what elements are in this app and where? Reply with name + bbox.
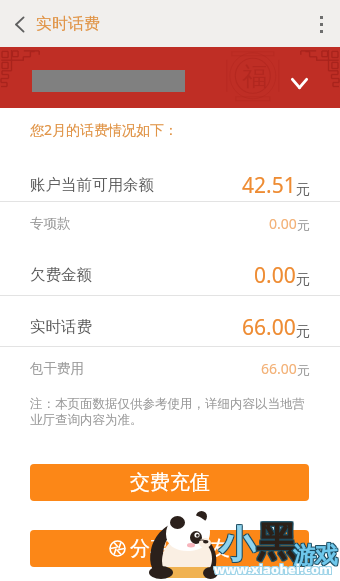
staticText: 小 bbox=[220, 521, 257, 568]
staticText: www.xiaohei.com bbox=[213, 559, 332, 577]
staticText: 实时话费 bbox=[36, 14, 100, 34]
staticText: 游 bbox=[294, 540, 317, 569]
staticText: 账户当前可用余额 bbox=[30, 175, 154, 195]
staticText: 黑 bbox=[256, 518, 297, 570]
staticText: 游 bbox=[294, 542, 317, 571]
staticText: 戏 bbox=[314, 540, 337, 569]
button[interactable]: More options bbox=[302, 5, 340, 43]
staticText: 黑 bbox=[257, 516, 298, 568]
staticText: 欠费金额 bbox=[30, 265, 92, 285]
staticText: 元 bbox=[296, 323, 310, 341]
staticText: 小 bbox=[219, 522, 256, 569]
staticText: 黑 bbox=[256, 517, 297, 569]
staticText: 元 bbox=[297, 362, 310, 378]
staticText: 元 bbox=[296, 271, 310, 289]
staticText: 小 bbox=[218, 522, 255, 569]
staticText: 小 bbox=[220, 520, 257, 567]
button[interactable]: 账户当前可用余额 bbox=[0, 169, 340, 201]
staticText: 游 bbox=[293, 541, 316, 570]
button[interactable]: 包干费用 bbox=[0, 346, 340, 390]
staticText: 小 bbox=[218, 521, 255, 568]
staticText: 黑 bbox=[255, 517, 296, 569]
staticText: 福 bbox=[242, 61, 267, 92]
staticText: 42.51 bbox=[242, 171, 296, 200]
button[interactable]: 实时话费 bbox=[0, 302, 340, 352]
staticText: www.xiaohei.com bbox=[215, 559, 334, 577]
staticText: 戏 bbox=[315, 540, 338, 569]
staticText: 黑 bbox=[256, 516, 297, 568]
staticText: www.xiaohei.com bbox=[214, 560, 333, 578]
other: Select account bbox=[291, 78, 308, 89]
button[interactable]: Back bbox=[0, 5, 38, 43]
staticText: 0.00 bbox=[269, 214, 297, 233]
staticText: 元 bbox=[296, 181, 310, 199]
staticText: 戏 bbox=[316, 541, 339, 570]
button[interactable]: 专项款 bbox=[0, 201, 340, 246]
staticText: www.xiaohei.com bbox=[215, 560, 334, 578]
staticText: www.xiaohei.com bbox=[214, 559, 333, 577]
staticText: 游 bbox=[292, 541, 315, 570]
staticText: 游 bbox=[294, 541, 317, 570]
staticText: 分享给好友 bbox=[130, 536, 230, 561]
staticText: 戏 bbox=[316, 540, 339, 569]
staticText: 包干费用 bbox=[30, 360, 84, 377]
staticText: 游 bbox=[292, 540, 315, 569]
staticText: 实时话费 bbox=[30, 317, 92, 337]
staticText: www.xiaohei.com bbox=[213, 561, 332, 579]
staticText: 黑 bbox=[255, 518, 296, 570]
staticText: 交费充值 bbox=[130, 470, 210, 495]
staticText: 小 bbox=[219, 521, 256, 568]
staticText: 66.00 bbox=[242, 313, 296, 342]
staticText: 游 bbox=[292, 542, 315, 571]
staticText: 游 bbox=[293, 542, 316, 571]
staticText: 黑 bbox=[257, 518, 298, 570]
staticText: www.xiaohei.com bbox=[213, 560, 332, 578]
staticText: 黑 bbox=[257, 517, 298, 569]
staticText: 戏 bbox=[315, 541, 338, 570]
staticText: 戏 bbox=[314, 542, 337, 571]
staticText: 游 bbox=[293, 540, 316, 569]
staticText: 您2月的话费情况如下： bbox=[30, 120, 179, 139]
staticText: www.xiaohei.com bbox=[214, 561, 333, 579]
button[interactable]: 交费充值 bbox=[30, 464, 309, 501]
staticText: 注：本页面数据仅供参考使用，详细内容以当地营业厅查询内容为准。 bbox=[30, 396, 309, 428]
button[interactable]: 分享给好友 bbox=[30, 530, 309, 567]
staticText: 元 bbox=[297, 217, 310, 233]
staticText: 戏 bbox=[315, 542, 338, 571]
staticText: 66.00 bbox=[261, 359, 297, 378]
staticText: 黑 bbox=[255, 516, 296, 568]
staticText: 小 bbox=[219, 520, 256, 567]
staticText: 0.00 bbox=[254, 261, 296, 290]
staticText: 专项款 bbox=[30, 215, 71, 232]
button[interactable]: 欠费金额 bbox=[0, 250, 340, 300]
staticText: 戏 bbox=[316, 542, 339, 571]
staticText: 戏 bbox=[314, 541, 337, 570]
staticText: www.xiaohei.com bbox=[215, 561, 334, 579]
button[interactable]: 福 bbox=[0, 47, 340, 108]
staticText: 小 bbox=[218, 520, 255, 567]
staticText: 小 bbox=[220, 522, 257, 569]
